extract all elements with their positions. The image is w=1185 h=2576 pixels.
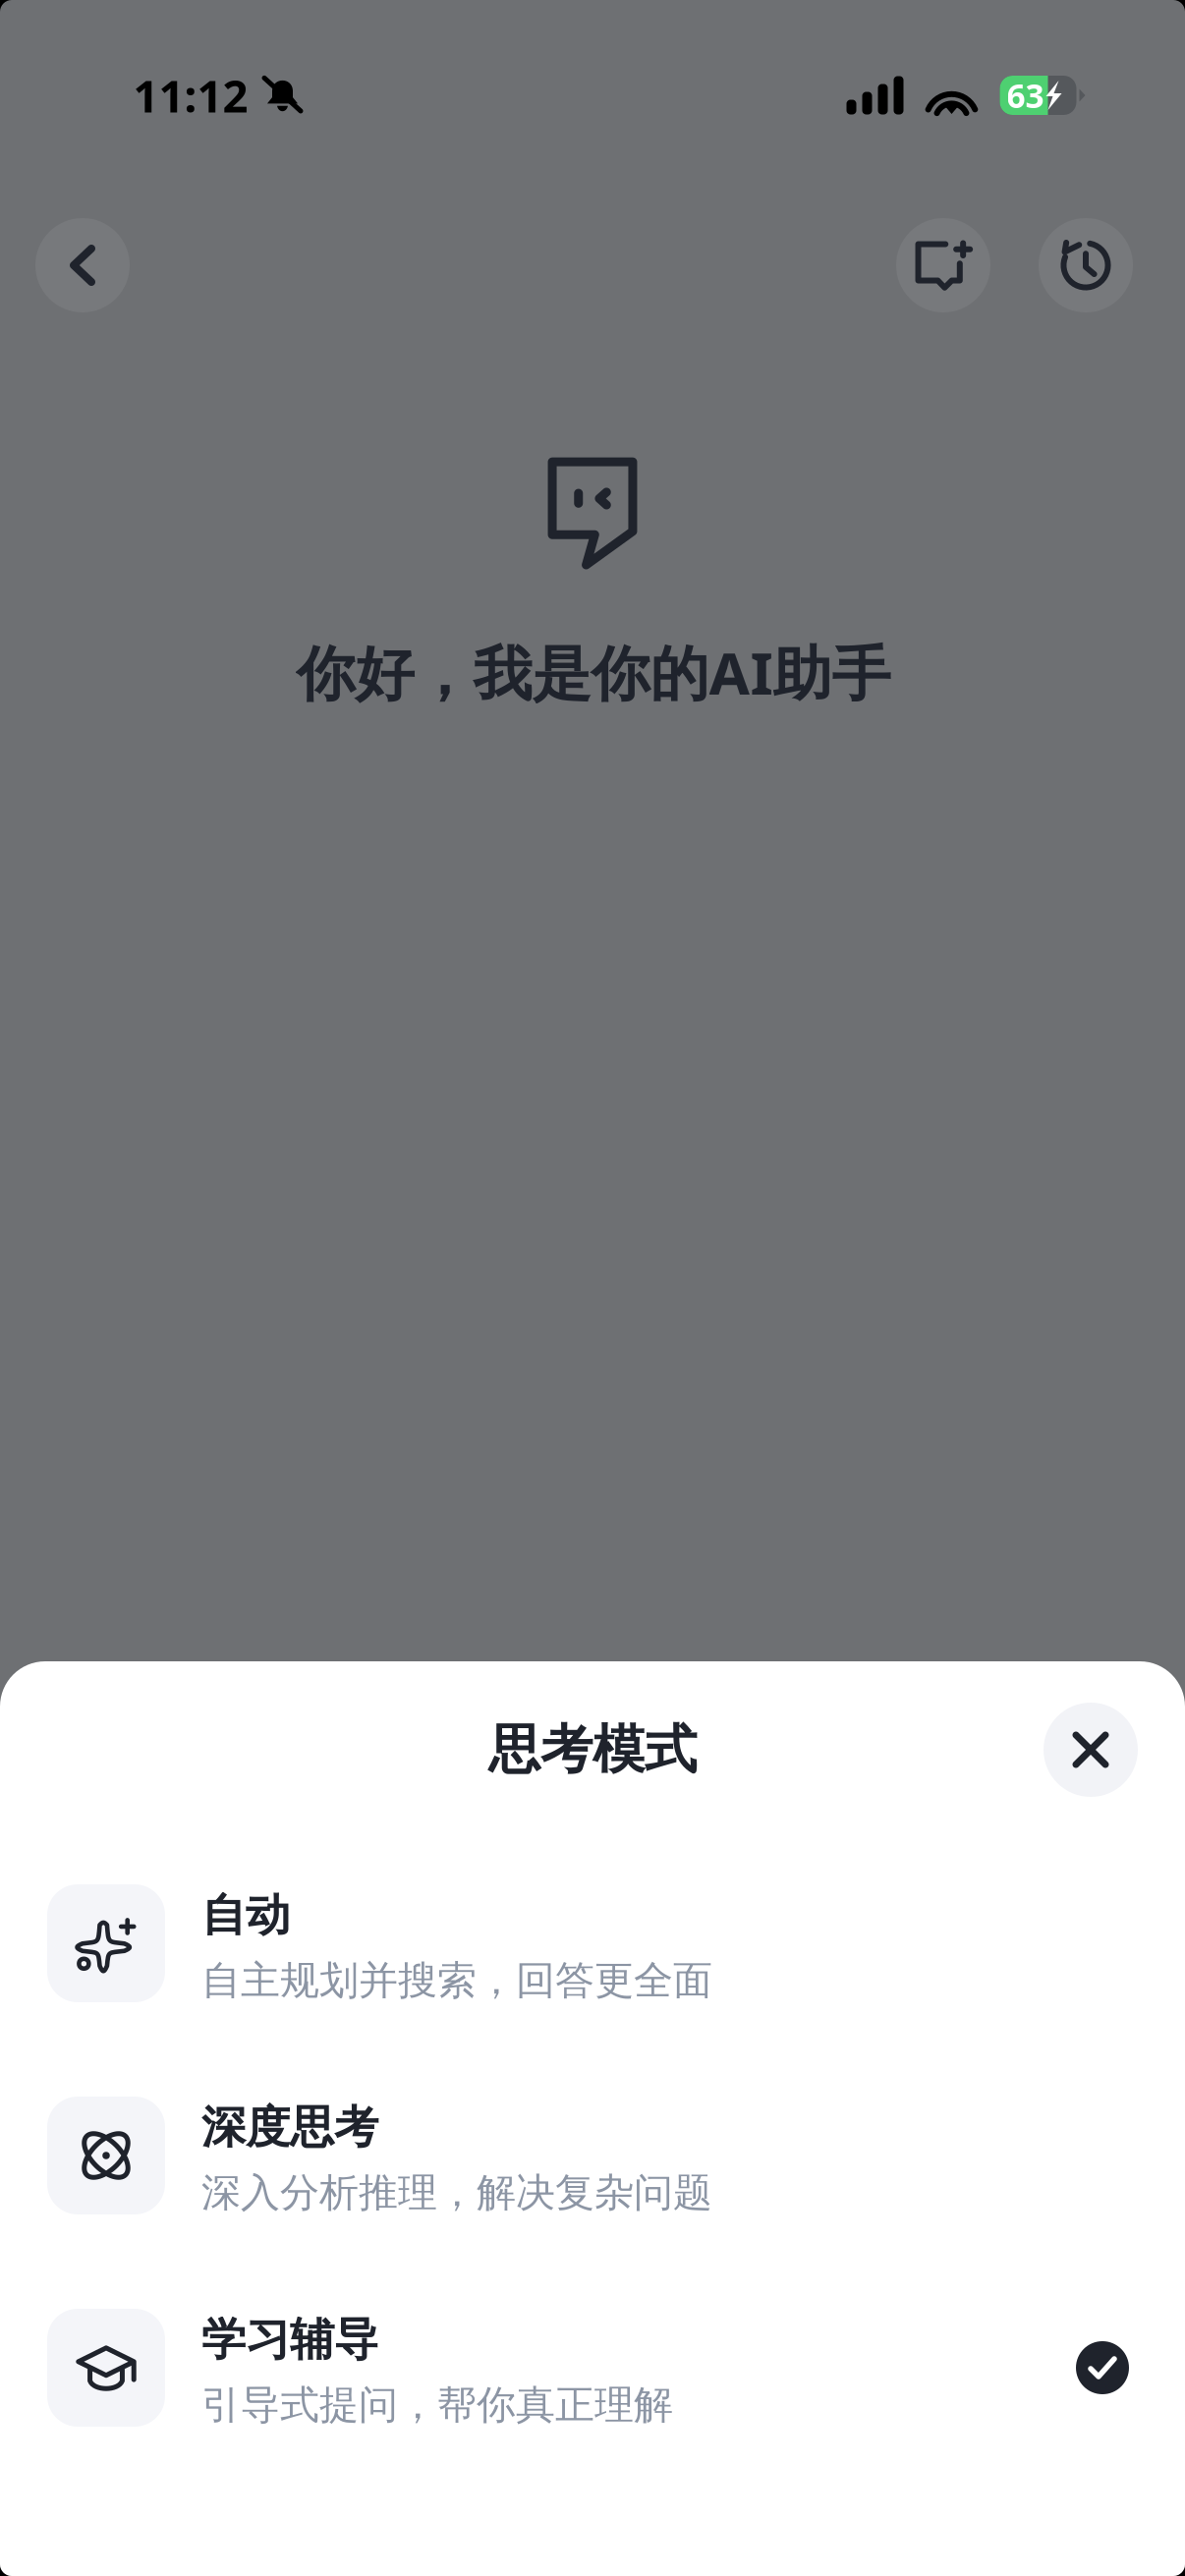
- button[interactable]: 学习辅导: [0, 2309, 1185, 2427]
- staticText: 自主规划并搜索，回答更全面: [201, 1956, 712, 2005]
- button[interactable]: 深度思考: [0, 2097, 1185, 2214]
- staticText: 学习辅导: [201, 2312, 378, 2367]
- button[interactable]: 自动: [0, 1884, 1185, 2002]
- staticText: 63: [1007, 74, 1044, 117]
- staticText: 自动: [201, 1888, 290, 1943]
- staticText: 11:12: [133, 66, 248, 125]
- staticText: 思考模式: [488, 1718, 697, 1782]
- staticText: 你好，我是你的AI助手: [296, 633, 891, 711]
- button[interactable]: Close: [1044, 1703, 1138, 1797]
- button[interactable]: Back: [35, 218, 130, 312]
- button[interactable]: History: [1039, 218, 1133, 312]
- button[interactable]: New chat: [896, 218, 990, 312]
- staticText: 深度思考: [201, 2100, 378, 2155]
- staticText: 引导式提问，帮你真正理解: [201, 2381, 673, 2429]
- staticText: 深入分析推理，解决复杂问题: [201, 2169, 712, 2217]
